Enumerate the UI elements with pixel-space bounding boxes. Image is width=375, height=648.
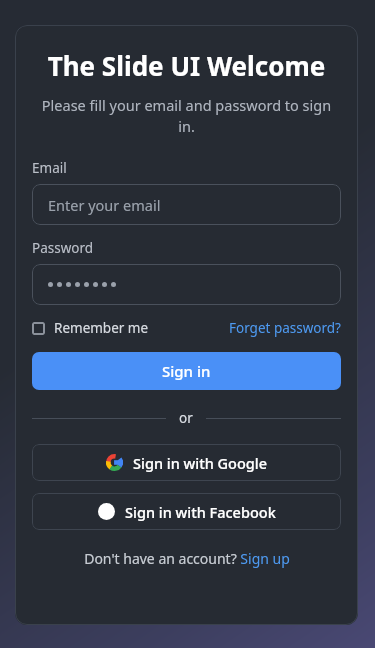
button[interactable]: Forget password?: [229, 317, 341, 339]
other: Google: [106, 454, 123, 471]
staticText: Don't have an account? Sign up: [84, 549, 290, 568]
staticText: Forget password?: [229, 319, 341, 337]
staticText: Email: [32, 159, 67, 177]
button[interactable]: Sign in: [32, 352, 341, 390]
staticText: Sign in: [162, 361, 211, 381]
staticText: The Slide UI Welcome: [32, 48, 341, 83]
button[interactable]: Sign in with Facebook: [32, 493, 341, 530]
button[interactable]: Enter your email: [32, 184, 341, 225]
staticText: Enter your email: [48, 195, 161, 215]
staticText: Password: [32, 239, 94, 257]
button[interactable]: Google: [32, 444, 341, 481]
staticText: Sign in with Facebook: [125, 502, 276, 522]
button[interactable]: Remember me: [32, 317, 149, 339]
button[interactable]: [32, 264, 341, 305]
button[interactable]: Don't have an account? Sign up: [32, 549, 341, 568]
staticText: or: [179, 409, 193, 427]
staticText: Remember me: [54, 319, 149, 337]
staticText: Please fill your email and password to s…: [36, 95, 337, 137]
staticText: Sign in with Google: [133, 453, 268, 473]
